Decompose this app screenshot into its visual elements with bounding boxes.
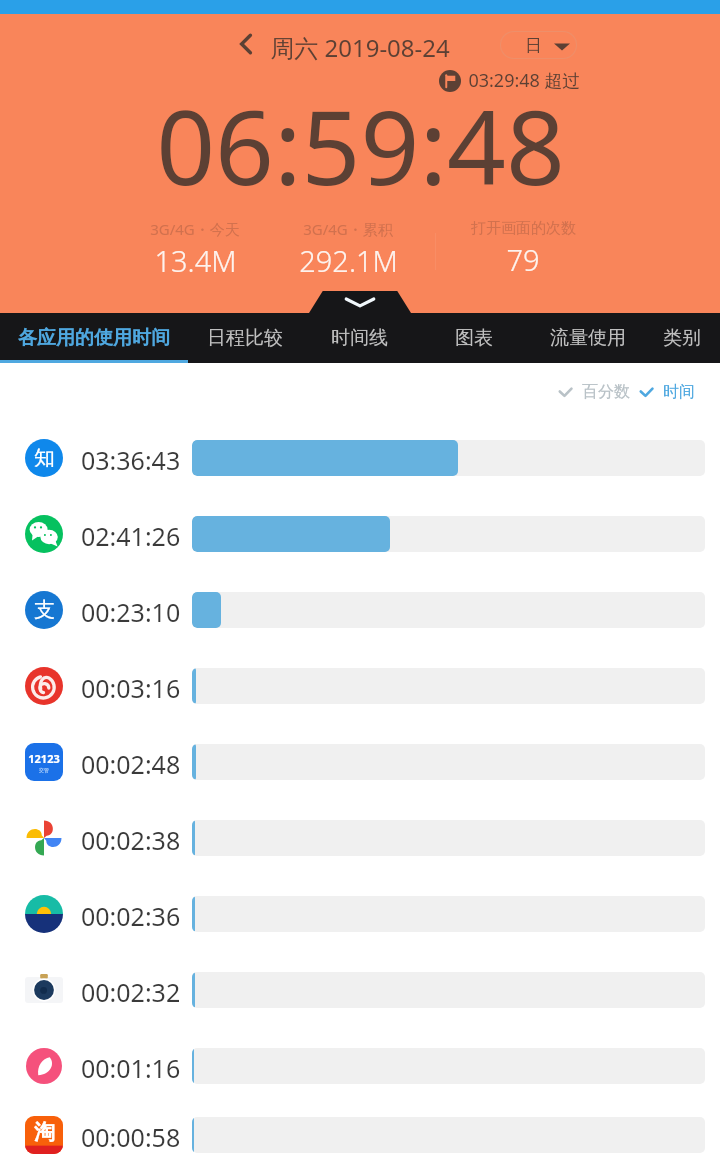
staticText: 06:59:48 bbox=[156, 75, 565, 215]
button[interactable]: 12123 bbox=[0, 724, 720, 800]
button[interactable]: 类别 bbox=[644, 313, 720, 363]
staticText: 00:03:16 bbox=[81, 671, 181, 701]
button[interactable]: 图表 bbox=[416, 313, 531, 363]
staticText: 3G/4G・今天 bbox=[150, 219, 240, 239]
button[interactable]: 日 bbox=[500, 31, 577, 59]
staticText: 图表 bbox=[455, 326, 493, 350]
staticText: 00:02:38 bbox=[81, 823, 181, 853]
staticText: 支 bbox=[34, 597, 55, 623]
staticText: 周六 2019-08-24 bbox=[270, 31, 450, 64]
staticText: 00:02:48 bbox=[81, 747, 181, 777]
button[interactable]: 00:03:16 bbox=[0, 648, 720, 724]
button[interactable]: 淘 bbox=[0, 1104, 720, 1166]
button[interactable]: 00:02:32 bbox=[0, 952, 720, 1028]
staticText: 03:36:43 bbox=[81, 443, 181, 473]
button[interactable]: 支 bbox=[0, 572, 720, 648]
button[interactable]: Back bbox=[229, 27, 263, 61]
button[interactable]: 00:01:16 bbox=[0, 1028, 720, 1104]
staticText: 00:00:58 bbox=[81, 1120, 181, 1150]
staticText: 79 bbox=[506, 240, 540, 279]
staticText: 时间线 bbox=[331, 326, 388, 350]
staticText: 百分数 bbox=[582, 382, 630, 402]
button[interactable]: 知 bbox=[0, 420, 720, 496]
staticText: 打开画面的次数 bbox=[471, 219, 576, 238]
staticText: 00:01:16 bbox=[81, 1051, 181, 1081]
button[interactable]: 00:02:38 bbox=[0, 800, 720, 876]
staticText: 3G/4G・累积 bbox=[303, 219, 393, 239]
staticText: 00:02:32 bbox=[81, 975, 181, 1005]
button[interactable]: 各应用的使用时间 bbox=[0, 313, 188, 363]
staticText: 13.4M bbox=[154, 241, 237, 280]
staticText: 知 bbox=[34, 445, 55, 471]
staticText: 02:41:26 bbox=[81, 519, 181, 549]
button[interactable]: 02:41:26 bbox=[0, 496, 720, 572]
staticText: 流量使用 bbox=[550, 326, 626, 350]
staticText: 日 bbox=[525, 35, 542, 56]
staticText: 292.1M bbox=[299, 241, 398, 280]
staticText: 日程比较 bbox=[207, 326, 283, 350]
button[interactable]: 时间 bbox=[640, 382, 695, 402]
button[interactable]: 流量使用 bbox=[531, 313, 644, 363]
staticText: 时间 bbox=[663, 382, 695, 402]
staticText: 00:02:36 bbox=[81, 899, 181, 929]
staticText: 12123 bbox=[28, 751, 60, 766]
staticText: 各应用的使用时间 bbox=[18, 326, 170, 350]
button[interactable]: 日程比较 bbox=[188, 313, 302, 363]
staticText: 00:23:10 bbox=[81, 595, 181, 625]
staticText: 淘 bbox=[34, 1119, 55, 1145]
button[interactable]: Collapse bbox=[309, 291, 411, 313]
staticText: 03:29:48 超过 bbox=[468, 68, 581, 93]
staticText: 交管 bbox=[39, 767, 49, 773]
button[interactable]: 百分数 bbox=[559, 382, 630, 402]
button[interactable]: 时间线 bbox=[302, 313, 416, 363]
staticText: 类别 bbox=[663, 326, 701, 350]
button[interactable]: 00:02:36 bbox=[0, 876, 720, 952]
